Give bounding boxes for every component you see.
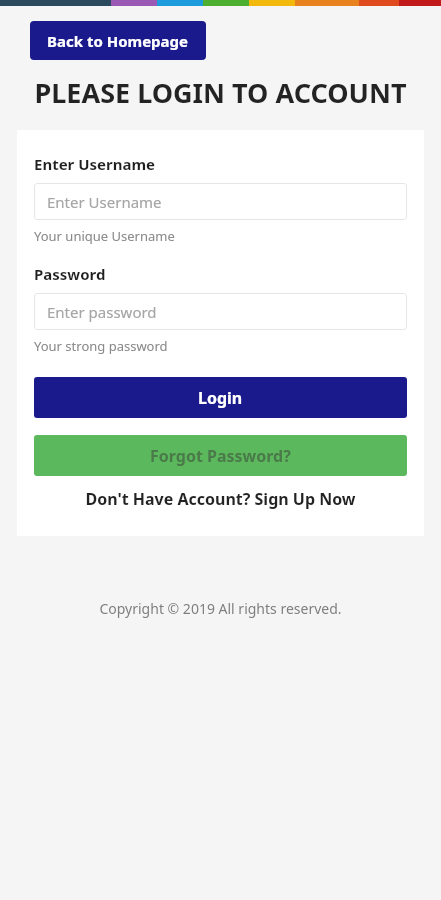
staticText: Your strong password xyxy=(34,337,168,355)
button[interactable]: Login xyxy=(34,377,407,418)
staticText: Login xyxy=(198,387,243,409)
staticText: PLEASE LOGIN TO ACCOUNT xyxy=(14,74,427,111)
staticText: Copyright © 2019 All rights reserved. xyxy=(0,599,441,618)
button[interactable]: Forgot Password? xyxy=(34,435,407,476)
button[interactable]: Back to Homepage xyxy=(30,21,206,60)
staticText: Don't Have Account? Sign Up Now xyxy=(85,488,356,510)
button[interactable]: Don't Have Account? Sign Up Now xyxy=(34,486,407,512)
staticText: Forgot Password? xyxy=(150,445,291,467)
staticText: Back to Homepage xyxy=(47,31,189,51)
staticText: Enter password xyxy=(47,302,157,322)
staticText: Password xyxy=(34,264,106,284)
staticText: Your unique Username xyxy=(34,227,175,245)
button[interactable]: Enter password xyxy=(34,293,407,330)
button[interactable]: Enter Username xyxy=(34,183,407,220)
staticText: Enter Username xyxy=(34,154,156,174)
staticText: Enter Username xyxy=(47,192,162,212)
